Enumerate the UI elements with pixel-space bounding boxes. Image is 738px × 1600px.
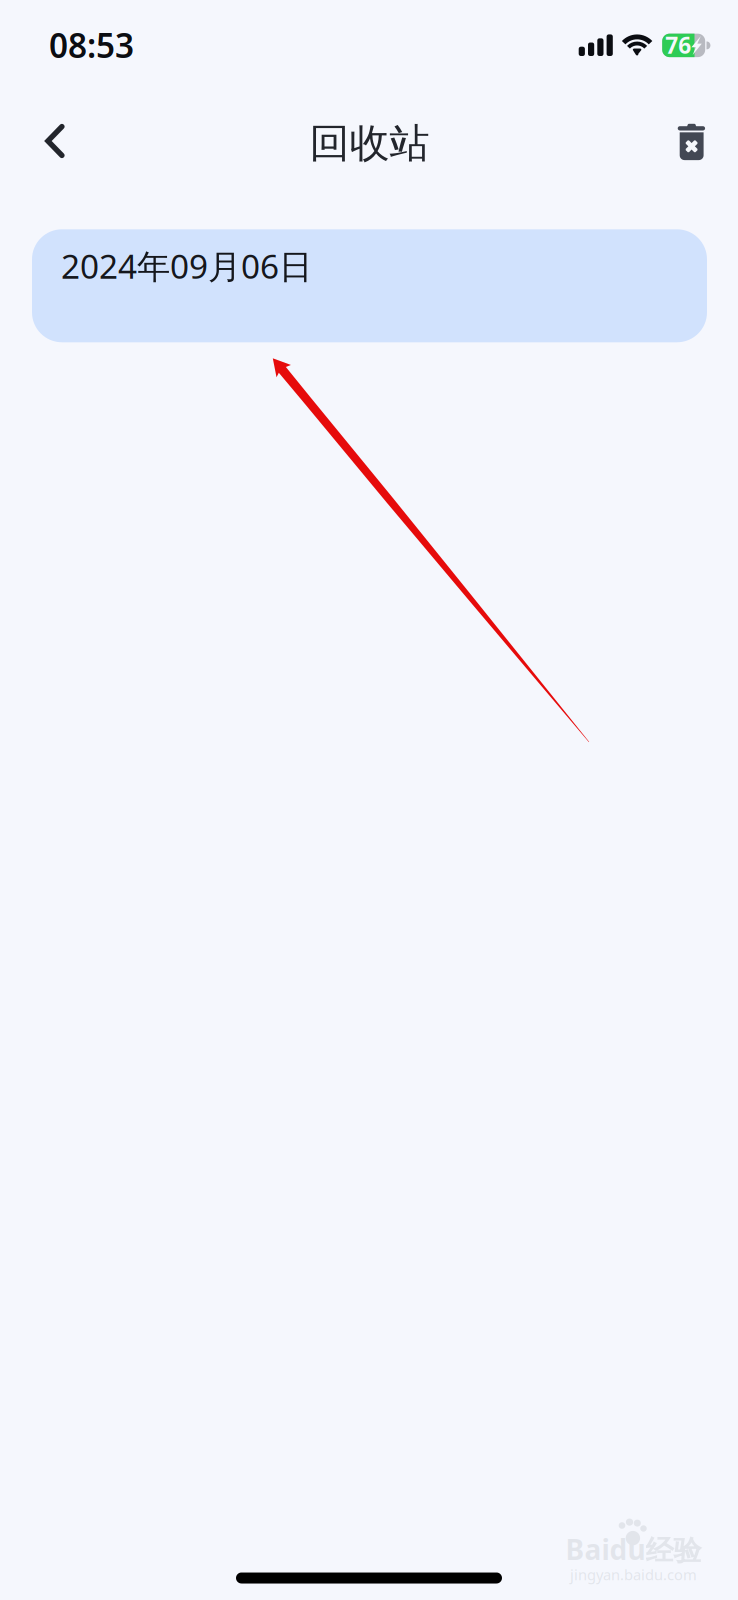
staticText: 2024年09月06日 bbox=[61, 244, 312, 288]
staticText: 08:53 bbox=[49, 23, 134, 67]
button[interactable]: Back bbox=[15, 101, 93, 181]
staticText: 76 bbox=[665, 30, 691, 60]
staticText: 回收站 bbox=[309, 119, 429, 168]
button[interactable]: Empty Recycle Bin bbox=[653, 102, 731, 182]
button[interactable]: 2024年09月06日 bbox=[32, 229, 707, 342]
staticText: jingyan.baidu.com bbox=[570, 1565, 697, 1584]
staticText: Baidu经验 bbox=[565, 1530, 701, 1568]
